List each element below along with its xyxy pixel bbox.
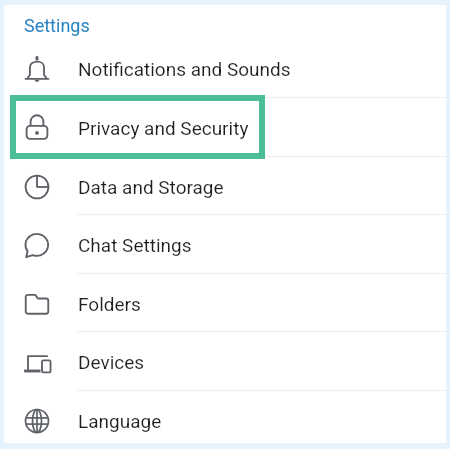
staticText: Devices [78,351,145,373]
other: Privacy and Security [22,113,52,143]
staticText: Chat Settings [78,234,192,256]
button[interactable]: Notifications and Sounds [0,38,450,97]
staticText: Notifications and Sounds [78,58,291,80]
staticText: Data and Storage [78,176,224,198]
button[interactable]: Chat Settings [0,214,450,273]
button[interactable]: Privacy and Security [0,97,450,156]
other: Data and Storage [22,172,52,202]
other: Chat Settings [22,230,52,260]
other: Language [22,406,52,436]
other: Devices [22,347,52,377]
other: Notifications and Sounds [22,54,52,84]
other: Folders [22,289,52,319]
button[interactable]: Folders [0,273,450,332]
button[interactable]: Language [0,390,450,449]
staticText: Privacy and Security [78,117,249,139]
staticText: Settings [24,15,90,36]
staticText: Folders [78,293,141,315]
button[interactable]: Devices [0,331,450,390]
button[interactable]: Data and Storage [0,156,450,215]
staticText: Language [78,410,162,432]
